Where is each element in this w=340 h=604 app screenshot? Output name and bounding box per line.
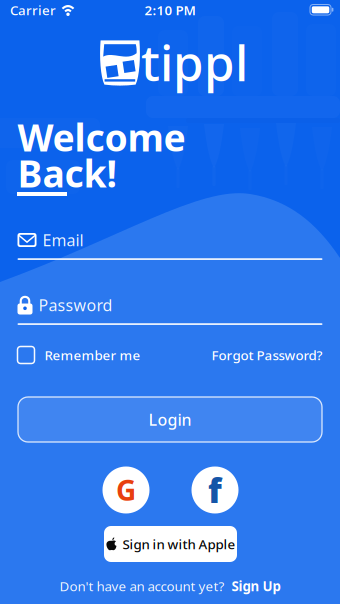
staticText: Forgot Password? — [211, 346, 322, 364]
button[interactable]: Remember me — [17, 343, 140, 367]
staticText: Email — [42, 229, 83, 251]
button[interactable]: Password — [17, 295, 322, 325]
staticText: tippl — [141, 29, 248, 95]
staticText: Sign Up — [231, 577, 280, 595]
button[interactable]: Login — [18, 397, 322, 442]
staticText: Carrier — [10, 1, 56, 19]
staticText: Don't have an account yet? — [59, 577, 224, 595]
staticText: G — [116, 471, 136, 509]
staticText: Back! — [17, 148, 117, 198]
staticText: Login — [148, 409, 191, 430]
button[interactable]: Sign in with Apple — [104, 526, 237, 562]
button[interactable]: Sign in with Facebook — [191, 466, 238, 513]
staticText: Sign in with Apple — [122, 535, 235, 553]
staticText: f — [208, 468, 222, 512]
staticText: 2:10 PM — [144, 1, 195, 19]
staticText: Password — [38, 294, 112, 316]
staticText: Remember me — [44, 346, 140, 364]
button[interactable]: Don't have an account yet? — [59, 575, 280, 597]
button[interactable]: Sign in with Google — [102, 466, 149, 513]
button[interactable]: Email — [17, 230, 322, 260]
staticText: Welcome — [17, 112, 185, 162]
button[interactable]: Forgot Password? — [211, 343, 322, 367]
